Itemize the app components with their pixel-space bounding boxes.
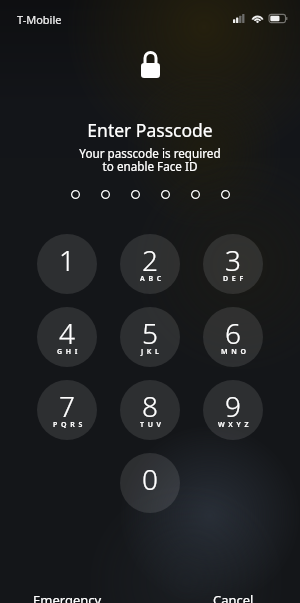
- staticText: WXYZ: [218, 420, 253, 430]
- button[interactable]: 4: [37, 307, 97, 367]
- button[interactable]: 7: [37, 380, 97, 440]
- staticText: 9: [225, 387, 241, 425]
- staticText: GHI: [57, 347, 82, 357]
- staticText: 5: [142, 314, 158, 352]
- button[interactable]: Emergency: [0, 591, 102, 603]
- staticText: 1: [59, 241, 75, 279]
- staticText: Your passcode is required to enable Face…: [0, 145, 300, 174]
- staticText: 6: [225, 314, 241, 352]
- staticText: Enter Passcode: [0, 118, 300, 142]
- staticText: MNO: [221, 347, 250, 357]
- button[interactable]: 5: [120, 307, 180, 367]
- button[interactable]: Cancel: [213, 591, 300, 603]
- button[interactable]: 0: [120, 453, 180, 513]
- staticText: 2: [142, 241, 158, 279]
- staticText: DEF: [223, 274, 247, 284]
- staticText: TUV: [140, 420, 165, 430]
- staticText: 4: [59, 314, 75, 352]
- staticText: 0: [142, 460, 158, 498]
- staticText: 8: [142, 387, 158, 425]
- button[interactable]: 8: [120, 380, 180, 440]
- button[interactable]: 2: [120, 234, 180, 294]
- staticText: PQRS: [53, 420, 86, 430]
- button[interactable]: 1: [37, 234, 97, 294]
- button[interactable]: 9: [203, 380, 263, 440]
- staticText: JKL: [141, 347, 163, 357]
- staticText: T-Mobile: [17, 12, 62, 27]
- button[interactable]: 6: [203, 307, 263, 367]
- staticText: ABC: [140, 274, 165, 284]
- staticText: 3: [225, 241, 241, 279]
- staticText: 7: [59, 387, 75, 425]
- button[interactable]: 3: [203, 234, 263, 294]
